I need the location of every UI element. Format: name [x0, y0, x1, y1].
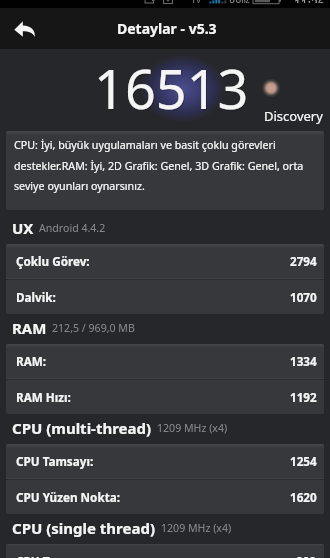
staticText: 1254	[290, 453, 317, 469]
staticText: UX	[12, 218, 34, 238]
staticText: 1209 MHz (x4)	[157, 421, 228, 435]
staticText: 16513	[95, 52, 250, 126]
staticText: CPU Yüzen Nokta:	[16, 489, 120, 505]
staticText: Discovery	[264, 107, 323, 125]
staticText: 1070	[290, 289, 317, 305]
staticText: 16513	[94, 51, 249, 125]
staticText: Android 4.4.2	[39, 221, 106, 235]
staticText: 88%	[229, 0, 251, 3]
button[interactable]: Dalvik:	[6, 280, 324, 314]
staticText: 1620	[290, 489, 317, 505]
staticText: RAM Hızı:	[16, 389, 71, 405]
button[interactable]: CPU Tamsayı:	[6, 444, 324, 478]
staticText: RAM:	[16, 353, 47, 369]
staticText: CPU: İyi, büyük uygulamaları ve basit ço…	[14, 138, 318, 193]
staticText: Detaylar - v5.3	[117, 19, 217, 38]
staticText: Çoklu Görev:	[16, 253, 90, 269]
staticText: 212,5 / 969,0 MB	[52, 321, 135, 335]
staticText: CPU Tamsayı:	[16, 553, 94, 558]
button[interactable]: RAM Hızı:	[6, 380, 324, 414]
staticText: 2794	[290, 253, 317, 269]
staticText: CPU Tamsayı:	[16, 453, 94, 469]
staticText: 800	[296, 553, 317, 558]
button[interactable]: RAM:	[6, 344, 324, 378]
staticText: 1209 MHz (x4)	[161, 521, 232, 535]
staticText: 1192	[290, 389, 317, 405]
staticText: RAM	[12, 318, 47, 338]
staticText: 1334	[290, 353, 317, 369]
staticText: Dalvik:	[16, 289, 56, 305]
staticText: 11:26	[294, 0, 325, 3]
staticText: CPU (multi-thread)	[12, 418, 152, 438]
staticText: CPU (single thread)	[12, 518, 156, 538]
button[interactable]: Çoklu Görev:	[6, 244, 324, 278]
button[interactable]: CPU Yüzen Nokta:	[6, 480, 324, 514]
button[interactable]: Back	[7, 14, 42, 44]
button[interactable]: CPU Tamsayı:	[6, 544, 324, 558]
